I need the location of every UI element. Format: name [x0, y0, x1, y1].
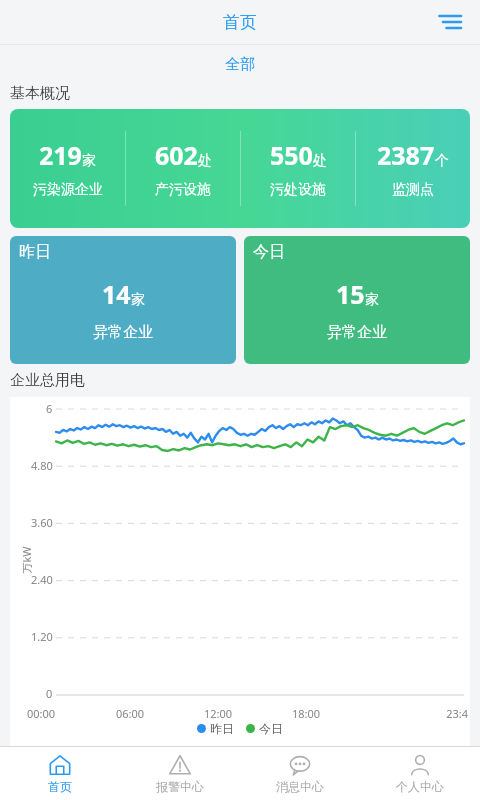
staticText: 家: [82, 152, 96, 170]
staticText: 3.60: [31, 515, 53, 530]
staticText: 2387: [377, 138, 435, 172]
staticText: 首页: [223, 12, 257, 33]
staticText: 550: [270, 138, 313, 172]
button[interactable]: 550: [241, 109, 355, 228]
button[interactable]: 2387: [356, 109, 470, 228]
button[interactable]: 首页: [0, 747, 120, 800]
button[interactable]: 今日: [244, 236, 470, 364]
button[interactable]: 昨日: [10, 236, 236, 364]
staticText: 6: [46, 401, 53, 416]
staticText: 18:00: [292, 706, 380, 721]
staticText: 12:00: [204, 706, 292, 721]
staticText: 0: [46, 686, 53, 701]
staticText: 产污设施: [155, 181, 211, 199]
staticText: 全部: [225, 55, 255, 74]
staticText: 今日: [253, 242, 285, 262]
staticText: 14: [102, 277, 131, 311]
staticText: 2.40: [31, 572, 53, 587]
staticText: 昨日: [19, 242, 51, 262]
staticText: 处: [313, 152, 327, 170]
staticText: 4.80: [31, 458, 53, 473]
staticText: 监测点: [392, 181, 434, 199]
staticText: 首页: [48, 779, 72, 794]
staticText: 异常企业: [93, 323, 153, 342]
staticText: 家: [365, 291, 379, 309]
staticText: 今日: [259, 721, 283, 736]
staticText: 报警中心: [156, 779, 204, 794]
staticText: 个人中心: [396, 779, 444, 794]
button[interactable]: 219: [10, 109, 470, 228]
staticText: 00:00: [27, 706, 116, 721]
staticText: 污处设施: [270, 181, 326, 199]
staticText: 23:4: [380, 706, 468, 721]
button[interactable]: 报警中心: [120, 747, 240, 800]
staticText: 消息中心: [276, 779, 324, 794]
staticText: 万kW: [18, 545, 33, 573]
staticText: 06:00: [116, 706, 204, 721]
staticText: 602: [155, 138, 198, 172]
staticText: 污染源企业: [33, 181, 103, 199]
button[interactable]: 全部: [0, 45, 480, 83]
button[interactable]: Menu: [432, 4, 468, 40]
staticText: 219: [39, 138, 82, 172]
staticText: 处: [198, 152, 212, 170]
staticText: 个: [435, 152, 449, 170]
button[interactable]: 消息中心: [240, 747, 360, 800]
staticText: 昨日: [210, 721, 234, 736]
staticText: 家: [131, 291, 145, 309]
staticText: 企业总用电: [10, 371, 85, 390]
button[interactable]: 个人中心: [360, 747, 480, 800]
staticText: 基本概况: [10, 84, 70, 103]
button[interactable]: 602: [126, 109, 240, 228]
staticText: 1.20: [31, 629, 53, 644]
staticText: 15: [336, 277, 365, 311]
button[interactable]: 219: [10, 109, 125, 228]
staticText: 异常企业: [327, 323, 387, 342]
